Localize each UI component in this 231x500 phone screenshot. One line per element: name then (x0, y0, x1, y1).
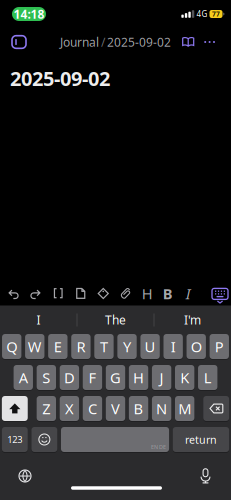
staticText: 123 (7, 433, 22, 446)
button[interactable]: Reading view (182, 36, 195, 47)
staticText: The (105, 312, 126, 328)
staticText: A (19, 368, 28, 387)
button[interactable]: V (106, 396, 125, 421)
staticText: O (191, 337, 202, 356)
button[interactable]: Emoji (31, 427, 57, 452)
button[interactable]: 123 (2, 427, 28, 452)
staticText: I (171, 337, 176, 356)
staticText: G (110, 368, 121, 387)
staticText: C (88, 399, 97, 418)
button[interactable]: S (37, 365, 56, 390)
button[interactable]: Switch keyboard (0, 470, 31, 482)
staticText: return (185, 432, 217, 447)
button[interactable]: The (77, 305, 154, 334)
staticText: D (64, 368, 75, 387)
staticText: E (54, 337, 62, 356)
button[interactable]: P (210, 334, 229, 359)
staticText: L (204, 368, 212, 387)
button[interactable]: Heading (137, 281, 157, 305)
staticText: S (42, 368, 50, 387)
staticText: H (142, 284, 153, 303)
button[interactable]: E (48, 334, 67, 359)
button[interactable]: N (152, 396, 171, 421)
button[interactable]: A (14, 365, 33, 390)
button[interactable]: Q (2, 334, 21, 359)
staticText: T (100, 337, 108, 356)
staticText: I (36, 312, 40, 328)
button[interactable]: H (129, 365, 148, 390)
staticText: I'm (184, 312, 201, 328)
staticText: F (88, 368, 96, 387)
button[interactable]: K (175, 365, 194, 390)
button[interactable]: B (129, 396, 148, 421)
button[interactable]: Add tag (92, 281, 114, 305)
button[interactable]: Open sidebar (0, 36, 26, 48)
button[interactable]: X (60, 396, 79, 421)
staticText: R (76, 337, 85, 356)
button[interactable]: Insert note (69, 281, 92, 305)
staticText: B (134, 399, 144, 418)
staticText: I (186, 284, 191, 303)
staticText: H (133, 368, 144, 387)
button[interactable]: G (106, 365, 125, 390)
staticText: / (101, 34, 105, 50)
button[interactable]: Italic (178, 281, 198, 305)
button[interactable]: Y (117, 334, 137, 359)
staticText: N (156, 399, 167, 418)
button[interactable]: L (198, 365, 217, 390)
button[interactable]: Return to call (12, 7, 46, 21)
button[interactable]: M (175, 396, 194, 421)
button[interactable]: R (71, 334, 91, 359)
button[interactable]: Bold (157, 281, 178, 305)
button[interactable]: D (60, 365, 79, 390)
staticText: Q (6, 337, 17, 356)
staticText: W (28, 337, 42, 356)
button[interactable]: Delete (203, 396, 229, 421)
button[interactable]: F (83, 365, 102, 390)
staticText: EN DE (151, 443, 166, 450)
staticText: J (160, 368, 164, 387)
button[interactable]: I (163, 334, 183, 359)
button[interactable]: J (152, 365, 171, 390)
staticText: P (215, 337, 224, 356)
button[interactable]: More options (195, 41, 231, 43)
button[interactable]: return (173, 427, 229, 452)
staticText: 77 (212, 10, 220, 18)
button[interactable]: Attach file (114, 281, 137, 305)
button[interactable]: Space (61, 427, 169, 452)
button[interactable]: Redo (24, 281, 47, 305)
staticText: Y (123, 337, 131, 356)
button[interactable]: Dismiss keyboard (209, 281, 231, 305)
button[interactable]: Dictate (200, 468, 231, 483)
button[interactable]: I'm (154, 305, 231, 334)
button[interactable]: Z (37, 396, 56, 421)
button[interactable]: C (83, 396, 102, 421)
staticText: 14:18 (13, 6, 44, 22)
button[interactable]: I (0, 305, 77, 334)
staticText: Z (42, 399, 50, 418)
button[interactable]: U (140, 334, 160, 359)
button[interactable]: Shift (2, 396, 28, 421)
staticText: V (111, 399, 120, 418)
button[interactable]: Insert link (47, 281, 69, 305)
staticText: 4G (196, 9, 207, 19)
staticText: B (163, 284, 173, 303)
staticText: 2025-09-02 (10, 65, 110, 92)
button[interactable]: O (186, 334, 206, 359)
button[interactable]: W (25, 334, 44, 359)
staticText: 2025-09-02 (107, 34, 171, 50)
staticText: Journal (60, 34, 99, 50)
button[interactable]: T (94, 334, 114, 359)
staticText: X (65, 399, 74, 418)
staticText: K (180, 368, 189, 387)
button[interactable]: Undo (2, 281, 24, 305)
staticText: M (178, 399, 191, 418)
staticText: U (145, 337, 156, 356)
